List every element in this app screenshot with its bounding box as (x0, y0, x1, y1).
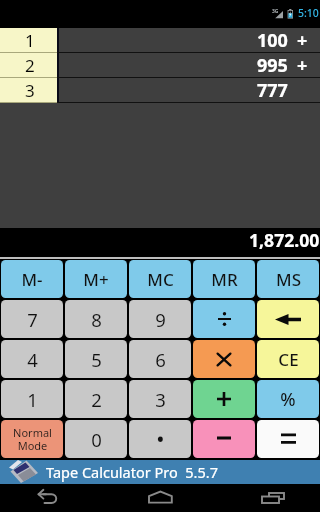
button[interactable]: Recent apps (213, 484, 320, 512)
staticText: 1 (27, 387, 38, 412)
staticText: 9 (155, 307, 166, 332)
button[interactable]: Minus (193, 420, 255, 458)
staticText: + (297, 53, 308, 78)
staticText: M- (21, 268, 43, 291)
staticText: 777 (257, 78, 288, 103)
button[interactable]: Equals (257, 420, 319, 458)
button[interactable]: Divide (193, 300, 255, 338)
staticText: 6 (155, 347, 166, 372)
staticText: 2 (91, 387, 102, 412)
staticText: 4 (27, 347, 38, 372)
button[interactable]: 9 (129, 300, 191, 338)
staticText: 0 (91, 427, 102, 452)
staticText: 995 (257, 53, 288, 78)
button[interactable]: Normal Mode (1, 420, 63, 458)
staticText: 1 (25, 29, 35, 52)
button[interactable]: CE (257, 340, 319, 378)
staticText: % (280, 387, 296, 412)
button[interactable]: 6 (129, 340, 191, 378)
button[interactable]: • (129, 420, 191, 458)
staticText: MS (276, 268, 301, 291)
staticText: 5:10 (298, 6, 319, 20)
staticText: • (157, 427, 164, 452)
button[interactable]: MS (257, 260, 319, 298)
staticText: + (297, 28, 308, 53)
staticText: 100 (257, 28, 288, 53)
button[interactable]: Backspace (257, 300, 319, 338)
staticText: 1,872.00 (249, 228, 320, 252)
staticText: 5 (91, 347, 102, 372)
button[interactable]: Home (106, 484, 213, 512)
button[interactable]: MR (193, 260, 255, 298)
staticText: CE (278, 348, 299, 371)
button[interactable]: 3 (129, 380, 191, 418)
button[interactable]: 8 (65, 300, 127, 338)
button[interactable]: % (257, 380, 319, 418)
button[interactable]: M+ (65, 260, 127, 298)
staticText: 2 (25, 54, 35, 77)
button[interactable]: M- (1, 260, 63, 298)
button[interactable]: 2 (65, 380, 127, 418)
button[interactable]: 0 (65, 420, 127, 458)
staticText: Tape Calculator Pro 5.5.7 (46, 462, 218, 482)
button[interactable]: Multiply (193, 340, 255, 378)
button[interactable]: Back (0, 484, 106, 512)
staticText: 3 (25, 79, 35, 102)
staticText: M+ (83, 268, 109, 291)
staticText: 7 (27, 307, 38, 332)
staticText: 3G (272, 8, 279, 15)
staticText: 3 (155, 387, 166, 412)
button[interactable]: 5 (65, 340, 127, 378)
button[interactable]: 7 (1, 300, 63, 338)
button[interactable]: 4 (1, 340, 63, 378)
staticText: MR (211, 268, 238, 291)
button[interactable]: Plus (193, 380, 255, 418)
staticText: MC (147, 268, 174, 291)
staticText: Normal Mode (13, 425, 52, 453)
staticText: 8 (91, 307, 102, 332)
button[interactable]: MC (129, 260, 191, 298)
button[interactable]: 1 (1, 380, 63, 418)
button[interactable]: Tape Calculator Pro 5.5.7 (0, 460, 320, 484)
